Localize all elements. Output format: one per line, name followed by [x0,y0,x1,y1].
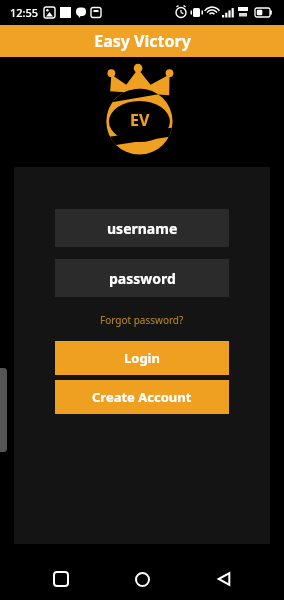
button[interactable]: password [55,259,229,297]
staticText: 12:55 [10,5,39,20]
staticText: Forgot password? [100,313,184,327]
button[interactable]: Login [55,341,229,375]
button[interactable]: Home [121,558,163,600]
staticText: username [107,219,178,238]
button[interactable]: username [55,209,229,247]
staticText: Create Account [92,388,192,406]
button[interactable]: Open drawer [0,368,7,452]
staticText: password [109,269,176,288]
button[interactable]: Create Account [55,380,229,414]
staticText: Easy Victory [94,30,191,52]
button[interactable]: Back [203,558,245,600]
button[interactable]: Recents [40,558,82,600]
button[interactable]: Forgot password? [94,311,190,329]
staticText: Login [124,349,160,367]
staticText: EV [130,109,150,131]
